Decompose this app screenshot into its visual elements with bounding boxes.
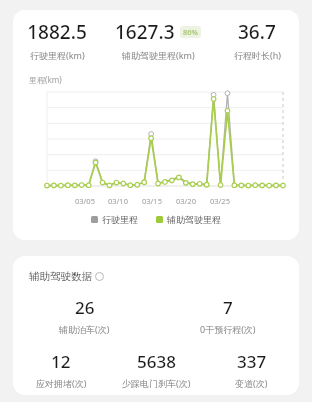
button[interactable]: 辅助驾驶数据 (29, 270, 104, 283)
staticText: 03/05 (75, 196, 95, 206)
staticText: 少踩电门刹车(次) (122, 377, 191, 389)
button[interactable]: 1882.5 (13, 19, 101, 61)
button[interactable]: 行驶里程 (91, 214, 138, 225)
staticText: 36.7 (238, 19, 276, 45)
other: Info (95, 272, 104, 281)
staticText: 里程(km) (29, 74, 62, 85)
staticText: 7 (223, 296, 233, 319)
staticText: 03/15 (142, 196, 162, 206)
staticText: 辅助驾驶里程(km) (122, 49, 195, 61)
button[interactable]: 337 (204, 350, 299, 389)
staticText: 1882.5 (27, 19, 87, 45)
staticText: 行驶里程 (102, 214, 138, 225)
button[interactable]: 36.7 (215, 19, 299, 61)
button[interactable]: 辅助驾驶里程 (156, 214, 221, 225)
staticText: 变道(次) (235, 377, 268, 389)
staticText: 26 (75, 296, 95, 319)
button[interactable]: 1627.3 (101, 19, 215, 61)
button[interactable]: 5638 (109, 350, 204, 389)
staticText: 行程时长(h) (234, 49, 281, 61)
staticText: 337 (237, 350, 267, 373)
staticText: 辅助驾驶数据 (29, 270, 92, 283)
staticText: 12 (51, 350, 71, 373)
button[interactable]: 12 (13, 350, 109, 389)
staticText: 0干预行程(次) (200, 323, 256, 335)
staticText: 行驶里程(km) (30, 49, 85, 61)
staticText: 1627.3 (115, 19, 175, 45)
staticText: 辅助驾驶里程 (167, 214, 221, 225)
button[interactable]: 7 (156, 296, 299, 335)
staticText: 5638 (137, 350, 176, 373)
staticText: 应对拥堵(次) (36, 377, 87, 389)
button[interactable]: 26 (13, 296, 156, 335)
staticText: 辅助泊车(次) (59, 323, 110, 335)
staticText: 03/20 (176, 196, 196, 206)
staticText: 03/25 (210, 196, 230, 206)
staticText: 86% (183, 27, 198, 37)
staticText: 03/10 (108, 196, 128, 206)
